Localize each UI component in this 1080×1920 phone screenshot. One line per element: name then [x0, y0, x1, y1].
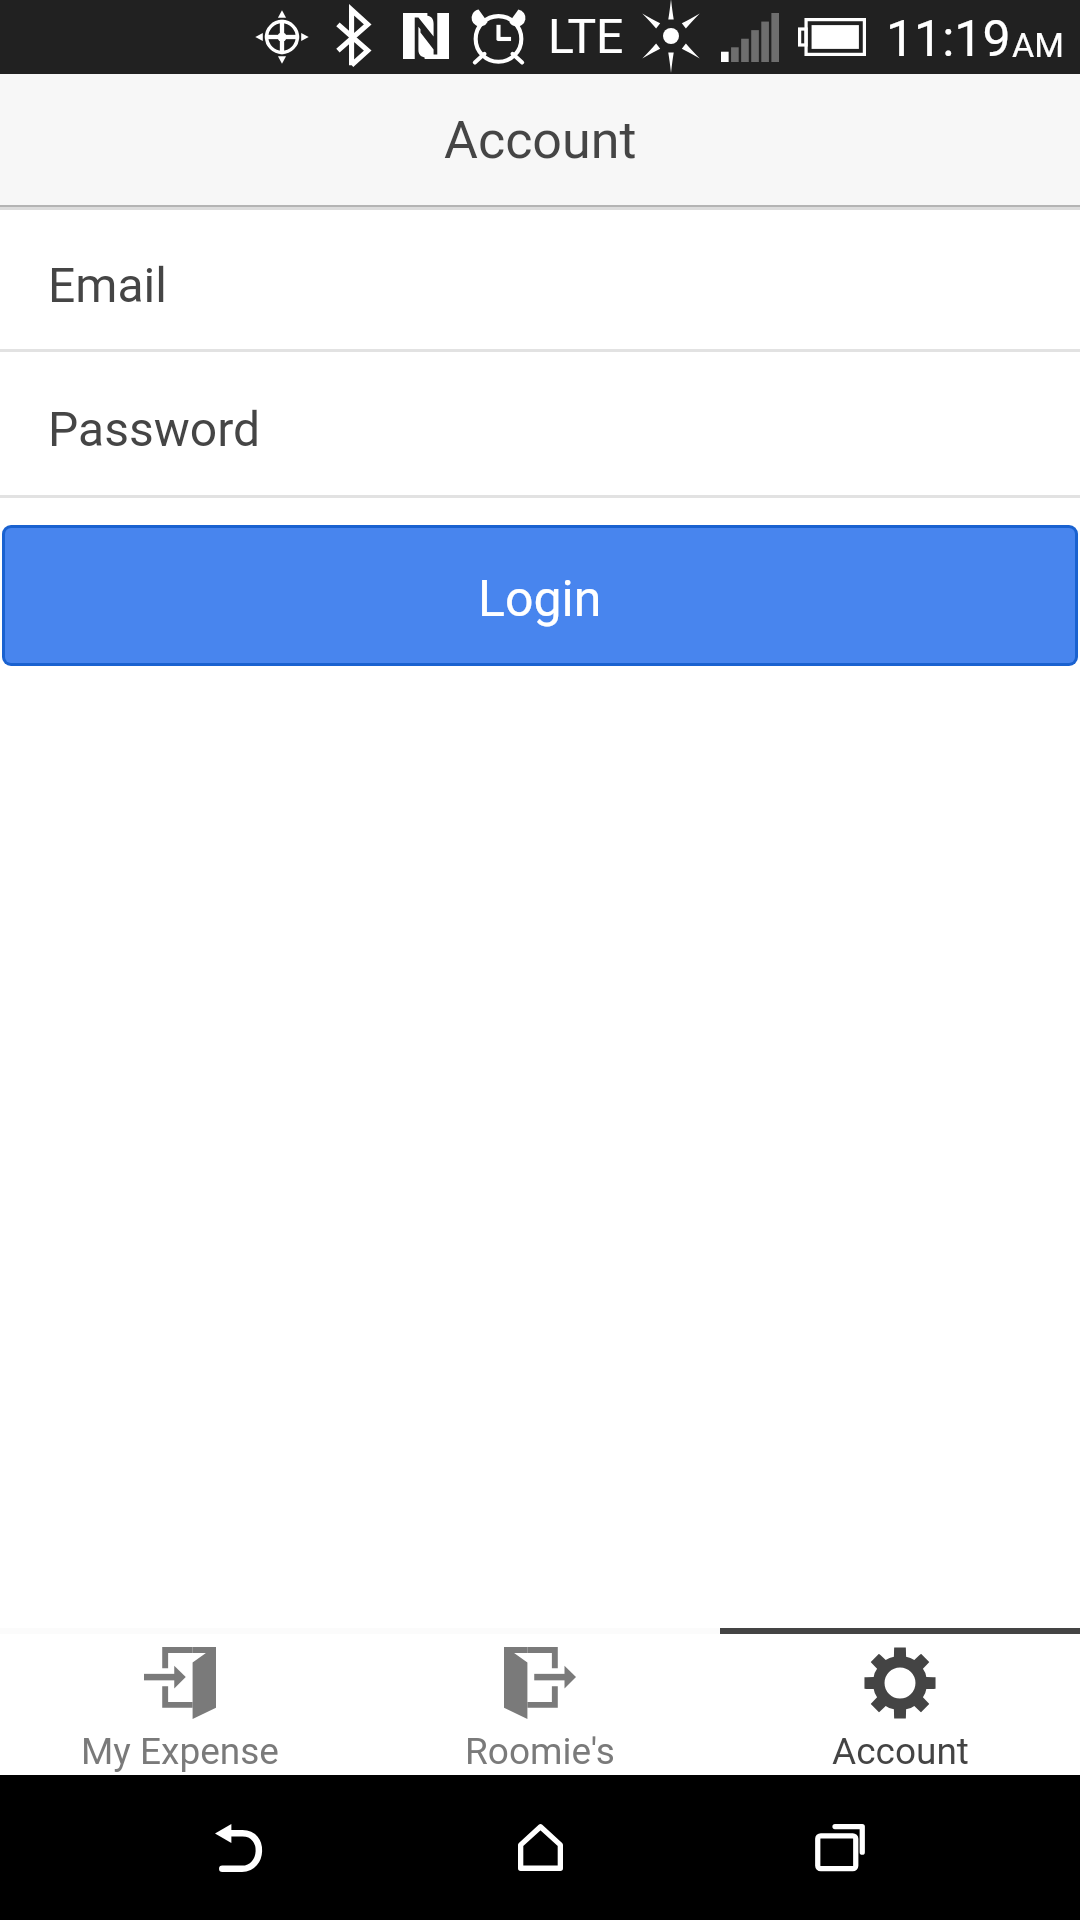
button[interactable]: Account: [720, 1628, 1080, 1775]
staticText: LTE: [548, 8, 624, 64]
staticText: My Expense: [81, 1730, 279, 1773]
button[interactable]: Email: [0, 210, 1080, 352]
staticText: AM: [1012, 25, 1064, 65]
button[interactable]: Recent apps: [780, 1787, 900, 1907]
button[interactable]: Roomie's: [360, 1628, 720, 1775]
button[interactable]: Login: [5, 528, 1075, 663]
button[interactable]: My Expense: [0, 1628, 360, 1775]
staticText: Account: [444, 110, 637, 171]
staticText: Password: [48, 401, 261, 457]
button[interactable]: Password: [0, 352, 1080, 498]
staticText: 11:19: [886, 10, 1011, 69]
button[interactable]: Back: [181, 1787, 301, 1907]
staticText: Roomie's: [465, 1730, 615, 1773]
staticText: Login: [478, 570, 602, 629]
button[interactable]: Home: [480, 1787, 600, 1907]
staticText: Account: [832, 1730, 969, 1773]
staticText: Email: [48, 257, 167, 313]
